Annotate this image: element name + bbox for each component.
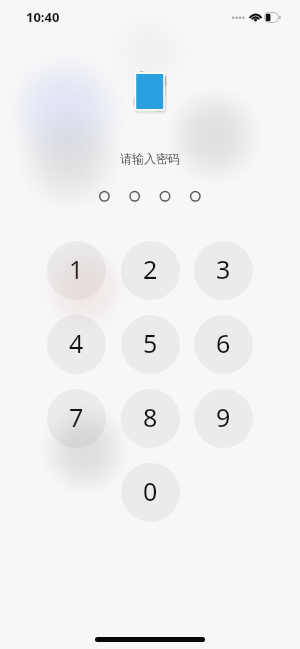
staticText: 0 <box>143 474 158 508</box>
staticText: 10:40 <box>26 8 60 26</box>
button[interactable]: 7 <box>47 389 106 448</box>
staticText: 1 <box>69 252 84 286</box>
button[interactable]: 3 <box>194 241 253 300</box>
staticText: 8 <box>143 400 158 434</box>
button[interactable]: 2 <box>121 241 180 300</box>
staticText: 7 <box>69 400 84 434</box>
button[interactable]: 0 <box>121 463 180 522</box>
staticText: 4 <box>69 326 84 360</box>
staticText: 请输入密码 <box>0 151 300 166</box>
button[interactable]: 6 <box>194 315 253 374</box>
button[interactable]: 9 <box>194 389 253 448</box>
button[interactable]: 8 <box>121 389 180 448</box>
staticText: 2 <box>143 252 158 286</box>
button[interactable]: 1 <box>47 241 106 300</box>
staticText: 6 <box>216 326 231 360</box>
button[interactable]: 4 <box>47 315 106 374</box>
staticText: 5 <box>143 326 158 360</box>
button[interactable]: 5 <box>121 315 180 374</box>
staticText: 9 <box>216 400 231 434</box>
staticText: 3 <box>216 252 231 286</box>
other: App icon <box>130 66 172 114</box>
